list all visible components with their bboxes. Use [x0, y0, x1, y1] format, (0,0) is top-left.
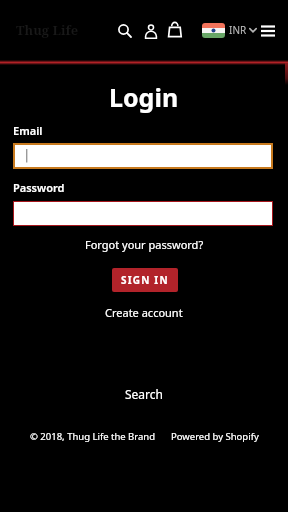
button[interactable]	[141, 20, 161, 40]
staticText: © 2018, Thug Life the Brand	[30, 430, 156, 443]
button[interactable]	[164, 18, 186, 40]
button[interactable]: INR	[202, 21, 257, 39]
staticText: Email	[13, 123, 43, 138]
button[interactable]	[113, 19, 134, 40]
staticText: SIGN IN	[121, 273, 169, 287]
button[interactable]: SIGN IN	[112, 268, 178, 292]
staticText: INR	[229, 23, 247, 37]
button[interactable]	[13, 143, 273, 169]
staticText: Thug Life	[16, 21, 79, 39]
staticText: Password	[13, 180, 65, 195]
button[interactable]	[13, 201, 273, 226]
button[interactable]: Search	[125, 386, 163, 402]
button[interactable]: Powered by Shopify	[171, 430, 259, 443]
button[interactable]: Forgot your password?	[85, 237, 204, 252]
staticText: Login	[109, 80, 179, 114]
button[interactable]: Thug Life	[16, 21, 79, 39]
button[interactable]: Create account	[105, 305, 183, 320]
button[interactable]	[258, 22, 278, 40]
